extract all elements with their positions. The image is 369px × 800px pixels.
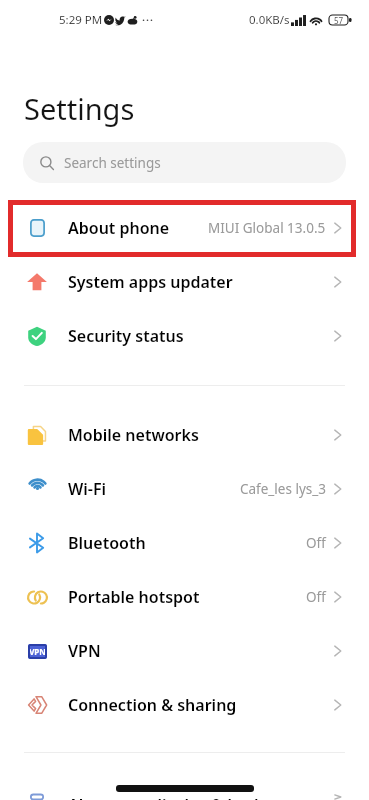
staticText: Always-on display & Lock	[68, 794, 264, 800]
button[interactable]: Wi-Fi	[0, 462, 369, 516]
button[interactable]: System apps updater	[0, 255, 369, 309]
button[interactable]: About phone	[0, 201, 369, 255]
staticText: Connection & sharing	[68, 694, 237, 716]
staticText: VPN	[29, 646, 46, 657]
button[interactable]: Portable hotspot	[0, 570, 369, 624]
staticText: 0.0KB/s	[249, 12, 290, 28]
staticText: Settings	[24, 89, 135, 128]
staticText: System apps updater	[68, 271, 233, 293]
staticText: 5:29 PM	[59, 12, 103, 28]
button[interactable]: Search settings	[23, 142, 346, 183]
staticText: VPN	[68, 640, 101, 662]
staticText: Search settings	[64, 154, 161, 172]
staticText: Off	[306, 534, 326, 552]
button[interactable]: Connection & sharing	[0, 678, 369, 732]
button[interactable]: VPN	[0, 624, 369, 678]
staticText: Portable hotspot	[68, 586, 200, 608]
staticText: 57	[334, 15, 344, 26]
button[interactable]: Mobile networks	[0, 408, 369, 462]
staticText: Bluetooth	[68, 532, 146, 554]
staticText: Cafe_les lys_3	[240, 480, 326, 498]
staticText: Wi-Fi	[68, 478, 107, 500]
staticText: About phone	[68, 217, 170, 239]
button[interactable]: Bluetooth	[0, 516, 369, 570]
button[interactable]: Always-on display & Lock	[0, 794, 369, 800]
staticText: Off	[306, 588, 326, 606]
button[interactable]: Security status	[0, 309, 369, 363]
staticText: Security status	[68, 325, 184, 347]
staticText: MIUI Global 13.0.5	[208, 219, 326, 237]
staticText: Mobile networks	[68, 424, 199, 446]
